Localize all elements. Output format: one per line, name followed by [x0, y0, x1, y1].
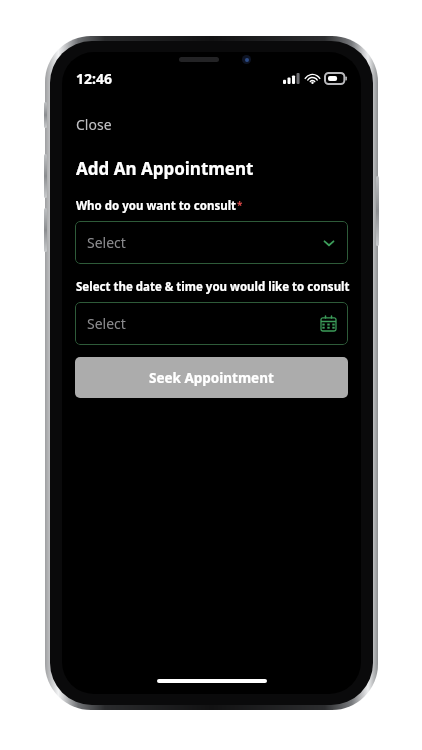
staticText: Who do you want to consult — [76, 198, 237, 214]
button[interactable]: Select — [75, 302, 348, 345]
other: Open list — [322, 236, 336, 250]
button[interactable]: Close — [72, 112, 116, 137]
staticText: Select — [87, 233, 126, 252]
staticText: Add An Appointment — [76, 157, 254, 180]
staticText: Select the date & time you would like to… — [76, 279, 350, 295]
staticText: Close — [76, 115, 112, 134]
staticText: * — [237, 198, 243, 212]
button[interactable]: Seek Appointment — [75, 357, 348, 398]
button[interactable]: Select — [75, 221, 348, 264]
staticText: Select — [87, 314, 126, 333]
staticText: Seek Appointment — [149, 369, 274, 387]
staticText: 12:46 — [76, 69, 112, 88]
other: Pick date and time — [321, 316, 336, 331]
